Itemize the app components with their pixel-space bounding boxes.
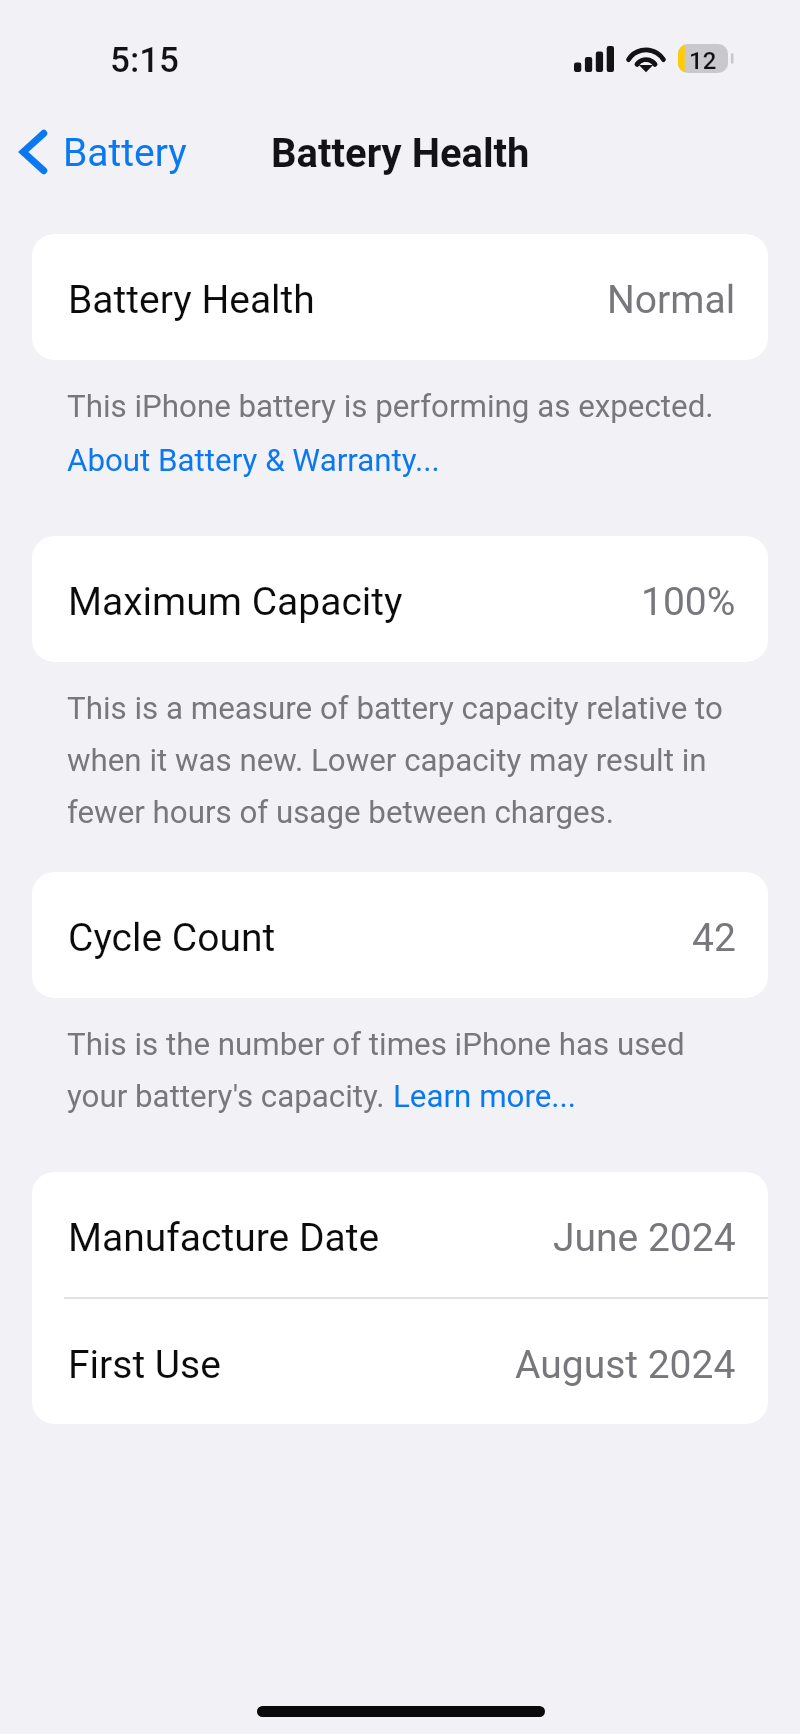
button[interactable]: Maximum Capacity [32,536,768,661]
staticText: Normal [607,277,736,323]
staticText: 5:15 [110,40,179,81]
staticText: This is the number of times iPhone has u… [67,1026,685,1063]
staticText: Battery Health [271,130,530,177]
staticText: This is a measure of battery capacity re… [67,690,752,831]
staticText: 42 [692,915,736,961]
staticText: your battery's capacity. [67,1078,393,1115]
staticText: 100% [641,579,736,625]
button[interactable]: Cycle Count [32,872,768,997]
staticText: Manufacture Date [68,1215,380,1261]
button[interactable]: Battery Health [32,234,768,359]
button[interactable]: Manufacture Date [32,1172,768,1297]
staticText: First Use [68,1342,221,1388]
button[interactable]: Learn more... [393,1078,577,1115]
staticText: August 2024 [515,1342,736,1388]
staticText: This iPhone battery is performing as exp… [67,388,714,425]
staticText: 12 [689,47,717,75]
button[interactable]: Back to Battery [0,123,201,181]
button[interactable]: First Use [32,1299,768,1424]
staticText: Battery Health [68,277,315,323]
staticText: Cycle Count [68,915,276,961]
staticText: Maximum Capacity [68,579,403,625]
button[interactable]: About Battery & Warranty... [67,442,440,479]
staticText: Battery [63,130,187,176]
staticText: June 2024 [553,1215,736,1261]
